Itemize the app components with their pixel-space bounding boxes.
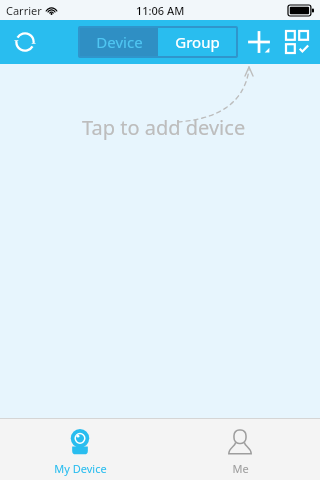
button[interactable]: Me	[160, 419, 320, 480]
staticText: Group	[175, 32, 220, 52]
staticText: 11:06 AM	[136, 3, 185, 18]
button[interactable]: Device	[80, 28, 158, 56]
staticText: Tap to add device	[82, 114, 246, 141]
button[interactable]: Scan QR code	[280, 25, 314, 59]
staticText: Device	[96, 32, 143, 52]
button[interactable]: Group	[158, 28, 236, 56]
button[interactable]: Add device	[242, 25, 276, 59]
staticText: My Device	[54, 461, 107, 476]
staticText: Me	[232, 461, 249, 476]
staticText: Carrier	[6, 3, 42, 18]
button[interactable]: My Device	[0, 419, 160, 480]
button[interactable]: Refresh	[8, 25, 42, 59]
